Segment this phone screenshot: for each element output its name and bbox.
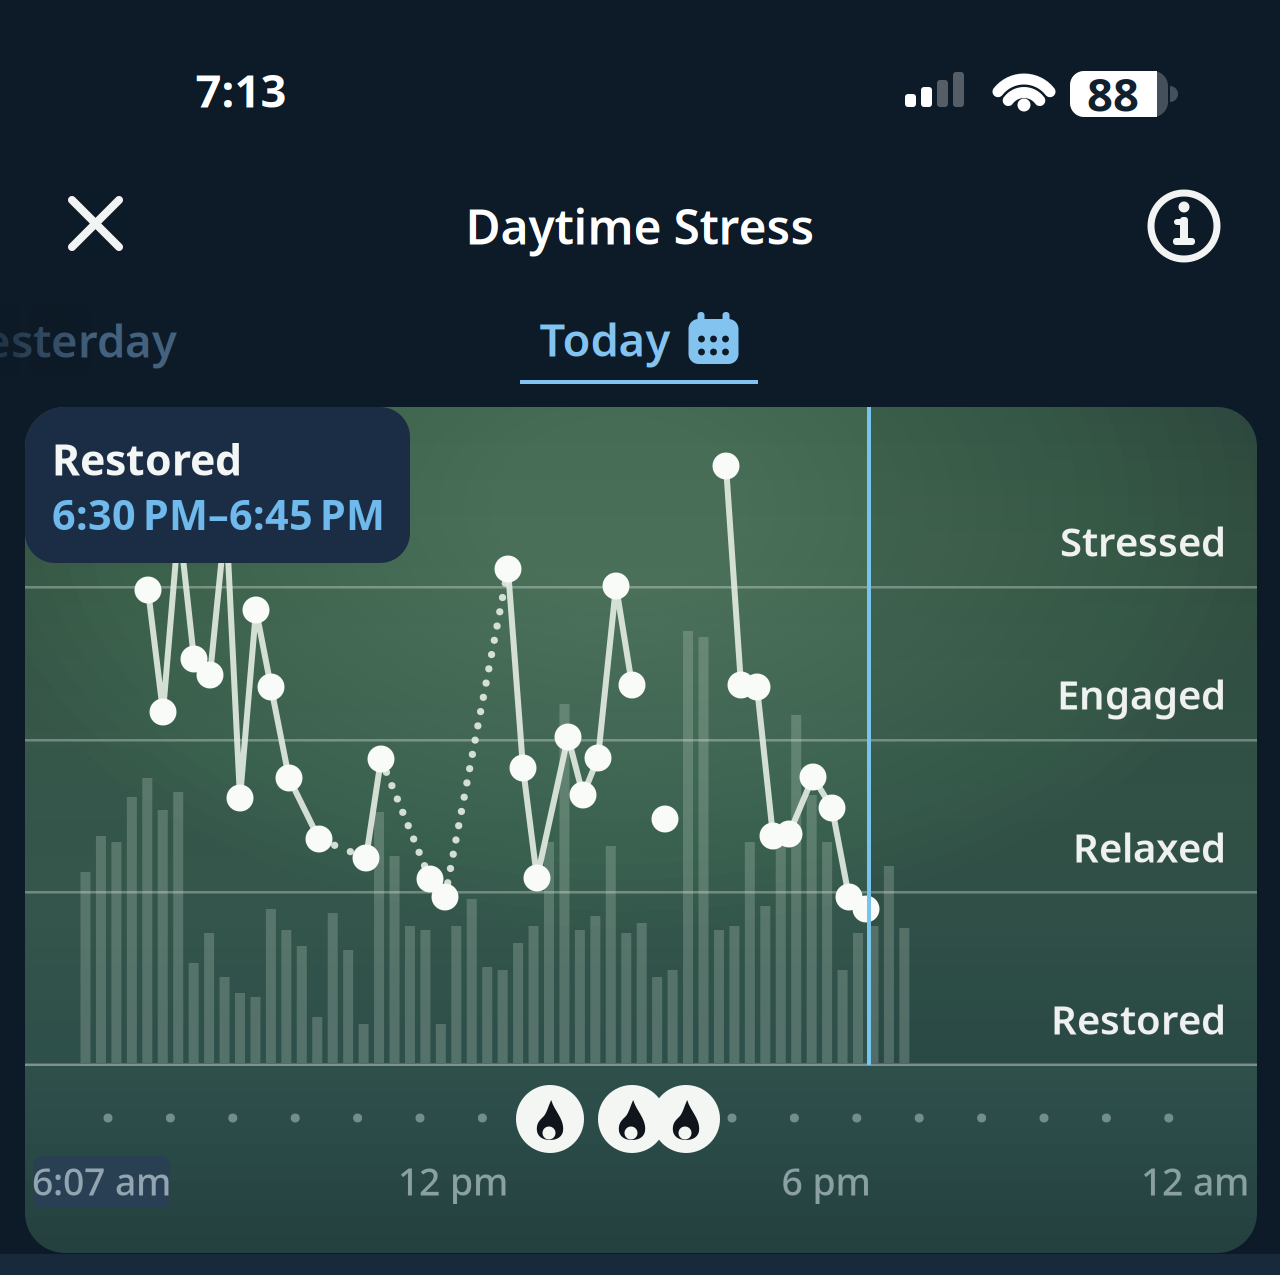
staticText: 6:30 PM–6:45 PM [52,487,385,541]
staticText: Daytime Stress [465,194,814,258]
staticText: Restored [1051,992,1226,1045]
staticText: Stressed [1060,514,1226,567]
staticText: 6 pm [781,1156,870,1206]
button[interactable]: Close [50,178,141,269]
button[interactable]: Yesterday [0,310,177,370]
button[interactable]: Stress moment [651,1084,721,1154]
button[interactable]: Today [539,309,740,369]
staticText: 7:13 [195,60,286,120]
button[interactable]: Stress moment [515,1084,585,1154]
staticText: Yesterday [0,310,177,370]
staticText: 88 [1087,64,1139,124]
staticText: Restored [52,431,242,487]
staticText: 12 pm [398,1156,508,1206]
button[interactable]: Info [1139,181,1229,271]
staticText: Relaxed [1073,820,1226,873]
staticText: Today [539,309,670,369]
staticText: 6:07 am [32,1156,171,1206]
staticText: Engaged [1057,667,1226,720]
staticText: 12 am [1141,1156,1249,1206]
button[interactable]: Stress moment [597,1084,667,1154]
